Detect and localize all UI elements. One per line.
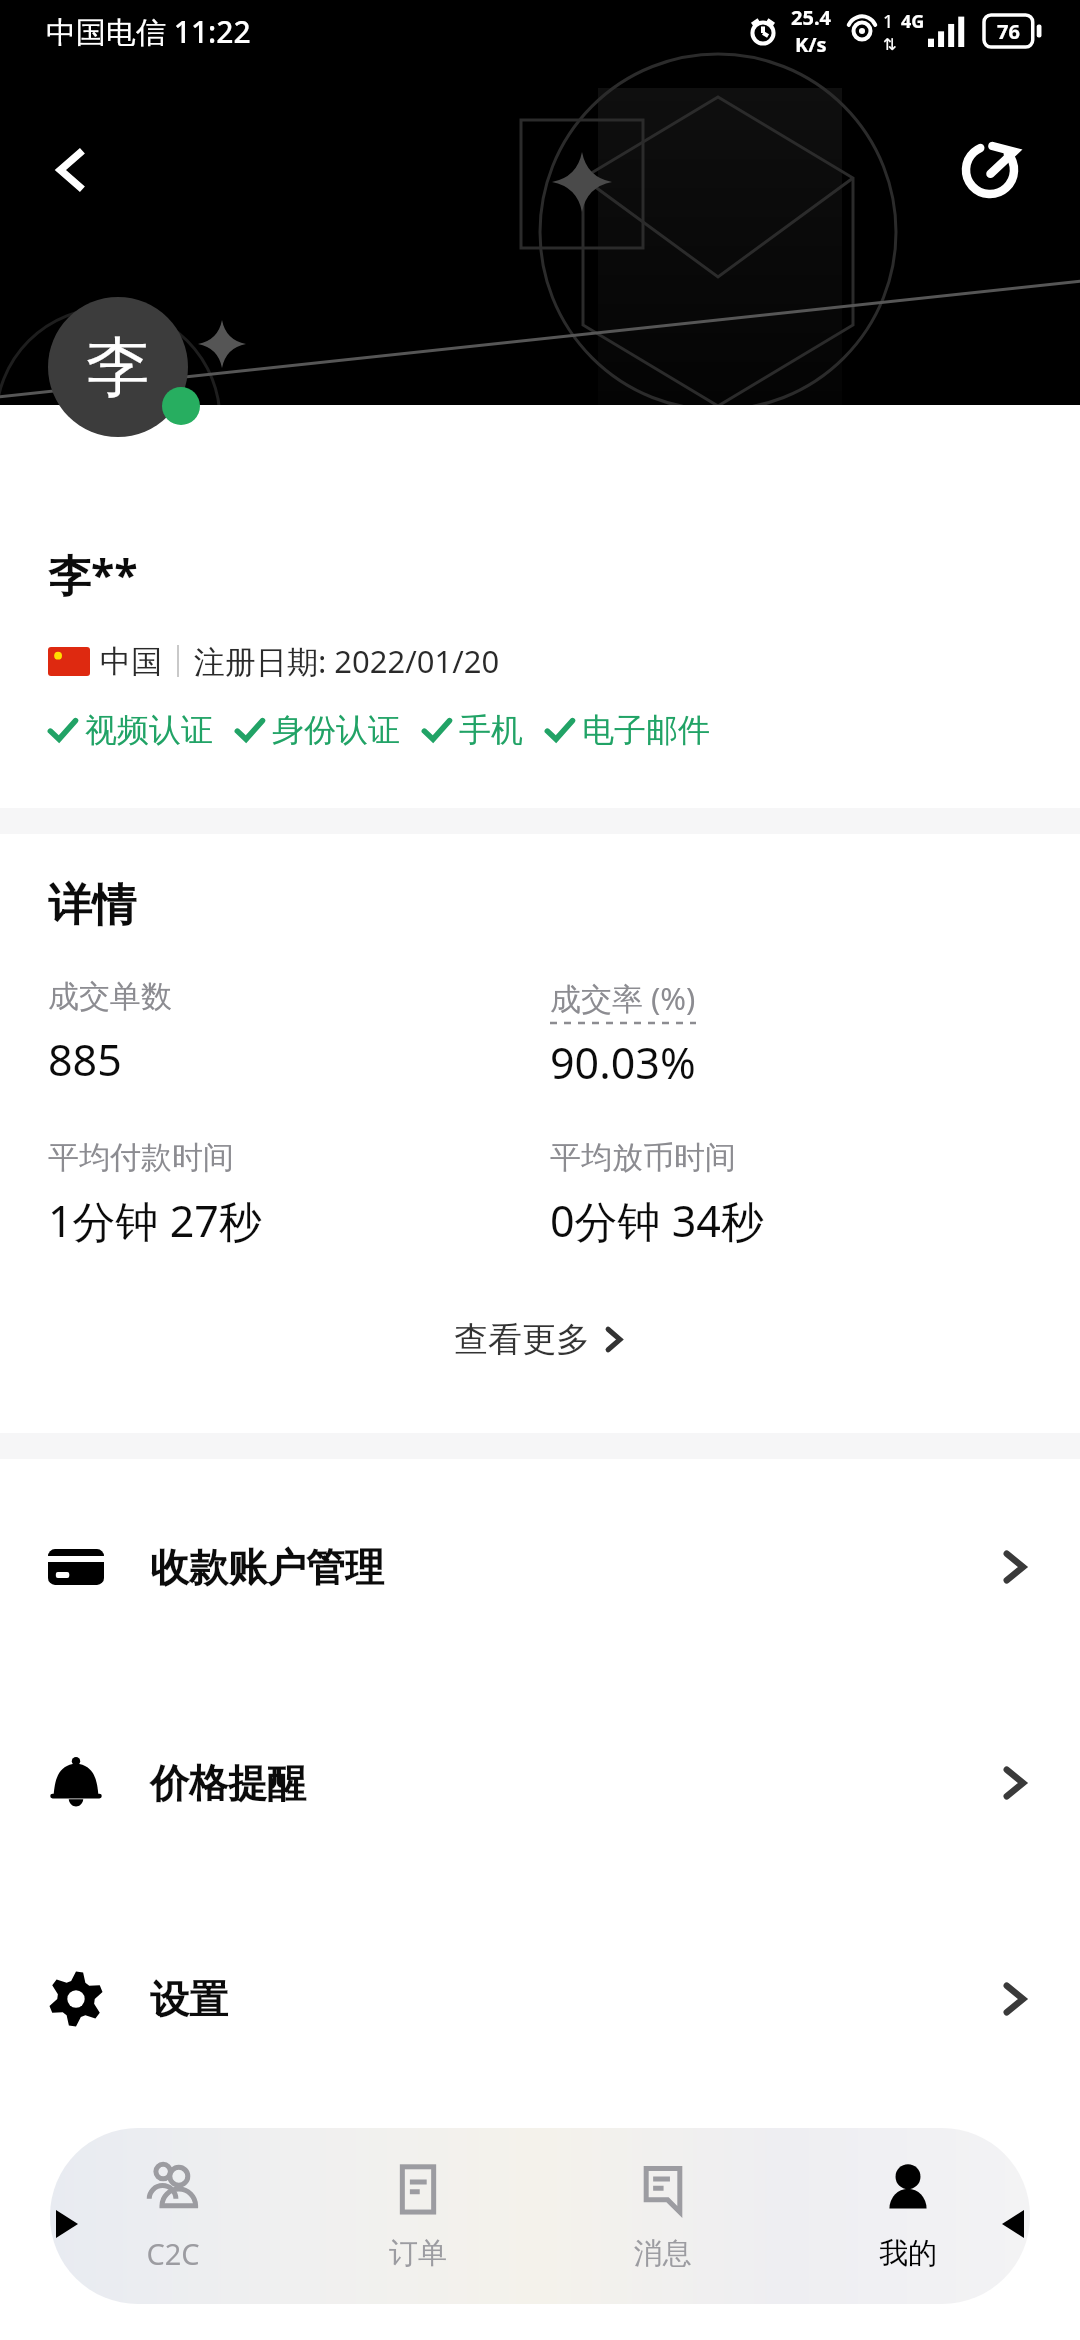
staticText: 电子邮件 <box>582 710 710 750</box>
button[interactable]: C2C <box>50 2128 295 2304</box>
staticText: 1分钟 27秒 <box>48 1191 262 1250</box>
staticText: 视频认证 <box>85 710 213 750</box>
staticText: 1 <box>883 9 894 34</box>
staticText: 手机 <box>459 710 523 750</box>
staticText: C2C <box>146 2234 200 2273</box>
button[interactable]: Back <box>24 124 116 216</box>
staticText: 我的 <box>879 2235 937 2272</box>
button[interactable]: 李 <box>48 297 188 437</box>
button[interactable]: 消息 <box>540 2128 785 2304</box>
staticText: 885 <box>48 1030 122 1089</box>
staticText: 平均放币时间 <box>550 1138 736 1177</box>
staticText: 90.03% <box>550 1033 696 1092</box>
staticText: 0分钟 34秒 <box>550 1191 764 1250</box>
staticText: ⇅ <box>883 35 897 54</box>
button[interactable]: Refresh <box>944 124 1036 216</box>
staticText: K/s <box>795 31 827 58</box>
button[interactable]: 订单 <box>295 2128 540 2304</box>
staticText: 李 <box>86 327 150 408</box>
staticText: 详情 <box>48 878 136 933</box>
staticText: 成交率 (%) <box>550 977 696 1019</box>
staticText: 25.4 <box>791 4 831 31</box>
staticText: 李** <box>48 545 138 604</box>
staticText: 76 <box>997 18 1020 45</box>
staticText: 中国 <box>100 642 162 681</box>
staticText: 身份认证 <box>272 710 400 750</box>
button[interactable]: 收款账户管理 <box>0 1459 1080 1675</box>
staticText: 成交单数 <box>48 977 172 1016</box>
staticText: 消息 <box>634 2235 692 2272</box>
button[interactable]: 查看更多 <box>0 1308 1080 1371</box>
staticText: 查看更多 <box>454 1318 590 1361</box>
staticText: 收款账户管理 <box>150 1543 384 1592</box>
staticText: 中国电信 11:22 <box>46 11 251 52</box>
staticText: 价格提醒 <box>150 1759 306 1808</box>
button[interactable]: 设置 <box>0 1891 1080 2107</box>
staticText: 订单 <box>389 2235 447 2272</box>
button[interactable]: 我的 <box>785 2128 1030 2304</box>
staticText: 4G <box>901 9 925 34</box>
staticText: 注册日期: 2022/01/20 <box>194 640 500 682</box>
staticText: 平均付款时间 <box>48 1138 234 1177</box>
staticText: 设置 <box>150 1975 228 2024</box>
button[interactable]: 价格提醒 <box>0 1675 1080 1891</box>
